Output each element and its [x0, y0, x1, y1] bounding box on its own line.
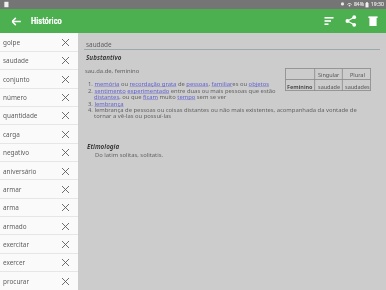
button[interactable]: negativo: [0, 143, 78, 161]
button[interactable]: quantidade: [0, 106, 78, 124]
button[interactable]: Remove: [57, 126, 73, 142]
staticText: negativo: [3, 148, 57, 157]
staticText: saudades: [345, 83, 370, 90]
button[interactable]: Remove: [57, 199, 73, 215]
button[interactable]: saudade: [0, 51, 78, 69]
staticText: exercitar: [3, 240, 57, 249]
button[interactable]: exercitar: [0, 235, 78, 253]
staticText: armar: [3, 185, 57, 194]
button[interactable]: exercer: [0, 253, 78, 271]
staticText: quantidade: [3, 111, 57, 120]
staticText: Plural: [350, 71, 365, 78]
button[interactable]: Remove: [57, 236, 73, 252]
button[interactable]: Sort: [318, 10, 340, 32]
staticText: 4. lembrança de pessoas ou coisas distan…: [88, 106, 357, 114]
staticText: exercer: [3, 258, 57, 267]
button[interactable]: carga: [0, 125, 78, 143]
button[interactable]: Remove: [57, 181, 73, 197]
staticText: arma: [3, 203, 57, 212]
staticText: Do latim solitas, solitatis.: [95, 151, 164, 159]
button[interactable]: Remove: [57, 254, 73, 270]
staticText: 1. memória ou recordação grata de pessoa…: [88, 80, 269, 88]
staticText: saudade: [318, 83, 341, 90]
button[interactable]: Remove: [57, 52, 73, 68]
staticText: 3. lembrança: [88, 100, 124, 108]
staticText: sau.da.de, feminino: [85, 67, 140, 75]
staticText: 84%: [354, 1, 364, 8]
button[interactable]: Remove: [57, 218, 73, 234]
staticText: conjunto: [3, 75, 57, 84]
staticText: saudade: [86, 40, 112, 49]
staticText: golpe: [3, 38, 57, 47]
button[interactable]: Remove: [57, 71, 73, 87]
button[interactable]: conjunto: [0, 70, 78, 88]
button[interactable]: Back: [9, 14, 24, 29]
button[interactable]: arma: [0, 198, 78, 216]
staticText: armado: [3, 222, 57, 231]
button[interactable]: armado: [0, 217, 78, 235]
staticText: carga: [3, 130, 57, 139]
staticText: número: [3, 93, 57, 102]
button[interactable]: Delete: [362, 10, 384, 32]
staticText: 19:30: [371, 1, 384, 8]
button[interactable]: Remove: [57, 273, 73, 289]
button[interactable]: procurar: [0, 272, 78, 290]
staticText: saudade: [3, 56, 57, 65]
staticText: tornar a vê-las ou possuí-las: [88, 112, 171, 120]
button[interactable]: Remove: [57, 89, 73, 105]
staticText: distantes, ou que ficam muito tempo sem …: [88, 93, 227, 101]
staticText: Substantivo: [86, 53, 122, 62]
staticText: Singular: [318, 71, 340, 78]
button[interactable]: golpe: [0, 33, 78, 51]
staticText: 2. sentimento experimentado entre duas o…: [88, 87, 276, 95]
button[interactable]: Remove: [57, 144, 73, 160]
staticText: Histórico: [31, 16, 62, 26]
button[interactable]: Share: [340, 10, 362, 32]
button[interactable]: armar: [0, 180, 78, 198]
button[interactable]: Remove: [57, 107, 73, 123]
staticText: aniversário: [3, 167, 57, 176]
staticText: procurar: [3, 277, 57, 286]
button[interactable]: número: [0, 88, 78, 106]
staticText: Feminino: [287, 83, 313, 90]
button[interactable]: aniversário: [0, 162, 78, 180]
button[interactable]: Remove: [57, 34, 73, 50]
staticText: Etimologia: [87, 142, 120, 151]
button[interactable]: Remove: [57, 163, 73, 179]
